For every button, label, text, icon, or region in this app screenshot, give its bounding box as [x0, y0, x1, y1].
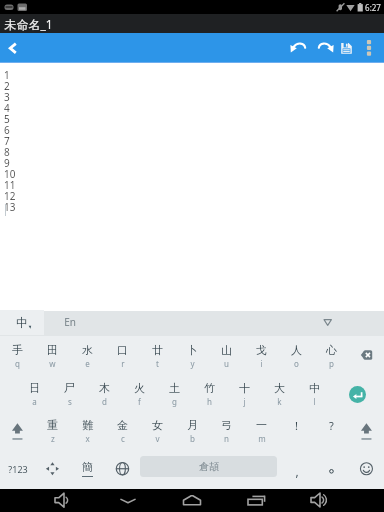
staticText: 水 — [82, 343, 93, 357]
button[interactable]: ? — [314, 412, 349, 450]
button[interactable] — [349, 412, 384, 450]
staticText: p — [329, 358, 334, 369]
button[interactable]: 手 — [0, 337, 35, 375]
button[interactable]: 中 — [297, 375, 332, 413]
button[interactable] — [2, 36, 28, 60]
staticText: c — [121, 433, 125, 444]
button[interactable]: 倉頡 — [140, 456, 277, 477]
staticText: h — [207, 396, 212, 407]
button[interactable]: En — [56, 311, 84, 333]
staticText: f — [138, 396, 141, 407]
staticText: 手 — [12, 343, 23, 357]
button[interactable]: 竹 — [192, 375, 227, 413]
button[interactable]: 大 — [262, 375, 297, 413]
staticText: 田 — [47, 343, 58, 357]
staticText: l — [313, 396, 316, 407]
button[interactable] — [113, 487, 143, 512]
button[interactable]: 心 — [314, 337, 349, 375]
button[interactable]: 十 — [227, 375, 262, 413]
staticText: 11 — [4, 178, 16, 189]
button[interactable]: 簡 — [70, 450, 105, 488]
button[interactable]: 難 — [70, 412, 105, 450]
button[interactable]: 田 — [35, 337, 70, 375]
staticText: t — [156, 358, 159, 369]
staticText: 倉頡 — [199, 460, 219, 473]
button[interactable]: 土 — [157, 375, 192, 413]
staticText: 一 — [256, 418, 267, 432]
staticText: i — [260, 358, 263, 369]
staticText: 5 — [4, 112, 10, 123]
button[interactable]: ?123 — [0, 450, 35, 488]
staticText: 13 — [4, 200, 16, 211]
button[interactable] — [242, 487, 272, 512]
staticText: 人 — [291, 343, 302, 357]
staticText: 弓 — [221, 418, 232, 432]
button[interactable] — [312, 36, 336, 60]
button[interactable] — [349, 337, 384, 375]
button[interactable]: , — [279, 450, 314, 488]
staticText: 日 — [29, 381, 40, 395]
staticText: j — [243, 396, 246, 407]
staticText: 3 — [4, 90, 10, 101]
staticText: 女 — [152, 418, 163, 432]
button[interactable] — [349, 386, 366, 403]
staticText: r — [121, 358, 125, 369]
staticText: 戈 — [256, 343, 267, 357]
staticText: 4 — [4, 101, 10, 112]
staticText: , — [295, 463, 299, 479]
button[interactable] — [0, 310, 44, 335]
button[interactable]: 水 — [70, 337, 105, 375]
button[interactable] — [314, 450, 349, 488]
staticText: 6 — [4, 123, 10, 134]
button[interactable] — [336, 36, 360, 60]
staticText: 9 — [4, 156, 10, 167]
button[interactable]: ! — [279, 412, 314, 450]
button[interactable] — [288, 36, 312, 60]
button[interactable]: 口 — [105, 337, 140, 375]
staticText: 竹 — [204, 381, 215, 395]
staticText: 金 — [117, 418, 128, 432]
button[interactable]: 火 — [122, 375, 157, 413]
button[interactable] — [177, 487, 207, 512]
button[interactable]: 戈 — [244, 337, 279, 375]
button[interactable]: 金 — [105, 412, 140, 450]
staticText: 7 — [4, 134, 10, 145]
button[interactable] — [303, 487, 335, 512]
staticText: d — [102, 396, 107, 407]
staticText: o — [294, 358, 299, 369]
button[interactable]: 山 — [209, 337, 244, 375]
button[interactable]: 一 — [244, 412, 279, 450]
button[interactable] — [315, 310, 341, 335]
staticText: 火 — [134, 381, 145, 395]
button[interactable] — [47, 487, 77, 512]
staticText: 大 — [274, 381, 285, 395]
button[interactable]: 木 — [87, 375, 122, 413]
staticText: 心 — [326, 343, 337, 357]
staticText: m — [258, 433, 266, 444]
button[interactable] — [0, 412, 35, 450]
staticText: 月 — [187, 418, 198, 432]
button[interactable]: 中 — [8, 311, 36, 333]
button[interactable]: 人 — [279, 337, 314, 375]
staticText: 十 — [239, 381, 250, 395]
button[interactable]: 日 — [17, 375, 52, 413]
staticText: y — [190, 358, 195, 369]
button[interactable]: 廿 — [140, 337, 175, 375]
staticText: 12 — [4, 189, 16, 200]
staticText: q — [15, 358, 20, 369]
staticText: ?123 — [8, 463, 28, 475]
button[interactable]: 尸 — [52, 375, 87, 413]
button[interactable] — [35, 450, 70, 488]
button[interactable] — [362, 36, 382, 60]
staticText: ? — [329, 418, 334, 433]
staticText: En — [64, 315, 76, 329]
staticText: 中 — [16, 315, 28, 330]
staticText: b — [190, 433, 195, 444]
button[interactable]: 重 — [35, 412, 70, 450]
button[interactable]: 卜 — [175, 337, 210, 375]
button[interactable] — [105, 450, 140, 488]
button[interactable]: 弓 — [209, 412, 244, 450]
button[interactable]: 女 — [140, 412, 175, 450]
button[interactable]: 月 — [175, 412, 210, 450]
button[interactable] — [349, 450, 384, 488]
